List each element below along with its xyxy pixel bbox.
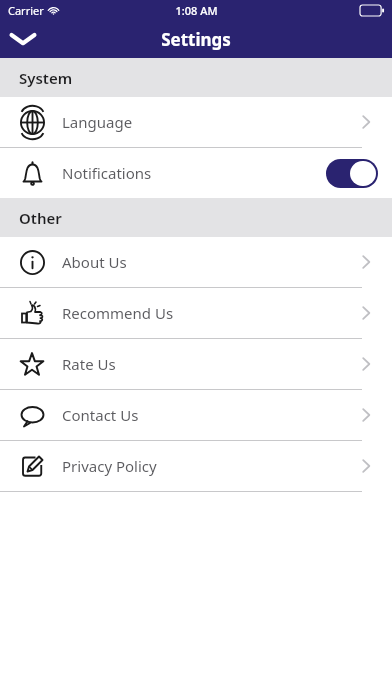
button[interactable]: Recommend Us xyxy=(0,288,392,338)
staticText: Language xyxy=(62,112,362,132)
button[interactable]: Language xyxy=(0,97,392,147)
button[interactable]: Privacy Policy xyxy=(0,441,392,491)
button[interactable]: Rate Us xyxy=(0,339,392,389)
button[interactable]: Notifications toggle xyxy=(326,159,378,188)
staticText: Privacy Policy xyxy=(62,456,362,476)
staticText: Carrier xyxy=(8,3,44,18)
button[interactable]: Notifications xyxy=(0,148,392,198)
staticText: 1:08 AM xyxy=(175,3,218,18)
button[interactable]: Collapse xyxy=(0,20,46,58)
staticText: Recommend Us xyxy=(62,303,362,323)
staticText: Rate Us xyxy=(62,354,362,374)
staticText: About Us xyxy=(62,252,362,272)
staticText: Other xyxy=(19,208,62,228)
staticText: System xyxy=(19,68,73,88)
staticText: Settings xyxy=(161,28,231,51)
staticText: Contact Us xyxy=(62,405,362,425)
staticText: Notifications xyxy=(62,163,326,183)
button[interactable]: Contact Us xyxy=(0,390,392,440)
button[interactable]: About Us xyxy=(0,237,392,287)
